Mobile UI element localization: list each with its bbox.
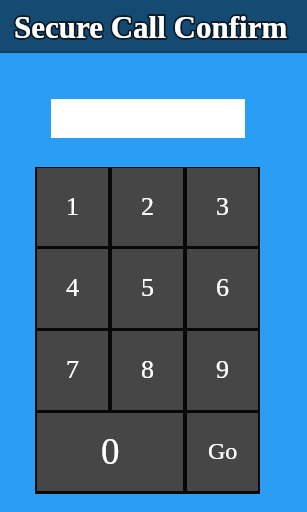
staticText: 3 — [216, 192, 229, 221]
staticText: 4 — [66, 273, 79, 302]
staticText: 1 — [66, 192, 79, 221]
button[interactable]: 3 — [187, 168, 258, 246]
button[interactable]: 9 — [187, 331, 258, 410]
staticText: 2 — [141, 192, 154, 221]
button[interactable]: 4 — [37, 249, 108, 328]
staticText: 9 — [216, 355, 229, 384]
staticText: 6 — [216, 273, 229, 302]
staticText: Secure Call Confirm — [14, 10, 288, 44]
staticText: Go — [208, 438, 238, 465]
staticText: 7 — [66, 355, 79, 384]
staticText: Secure Call Confirm — [14, 10, 288, 44]
staticText: 0 — [101, 431, 120, 472]
staticText: 8 — [141, 355, 154, 384]
button[interactable]: Go — [187, 413, 258, 491]
button[interactable]: 0 — [37, 413, 183, 491]
button[interactable]: 8 — [112, 331, 183, 410]
button[interactable]: 6 — [187, 249, 258, 328]
button[interactable]: 1 — [37, 168, 108, 246]
staticText: 5 — [141, 273, 154, 302]
button[interactable]: 7 — [37, 331, 108, 410]
button[interactable]: 5 — [112, 249, 183, 328]
button[interactable]: 2 — [112, 168, 183, 246]
